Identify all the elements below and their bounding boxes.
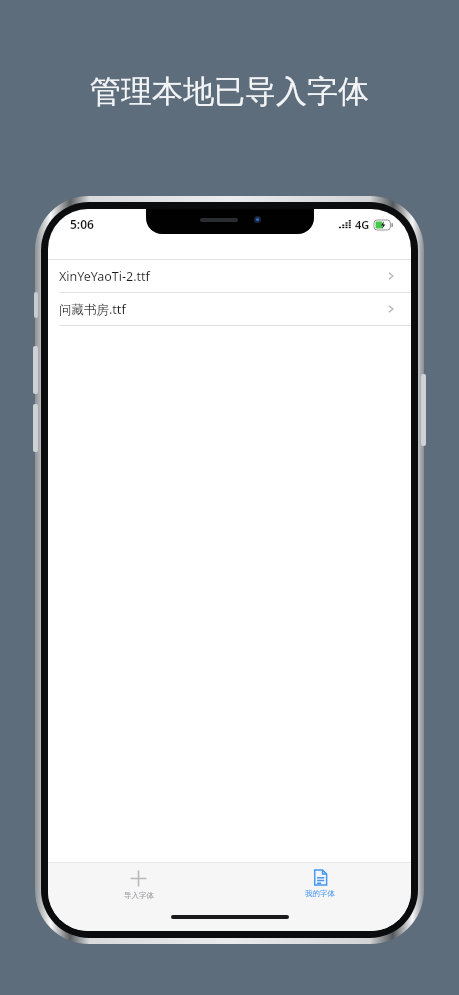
staticText: XinYeYaoTi-2.ttf: [59, 268, 385, 285]
other: My fonts: [312, 869, 329, 886]
button[interactable]: My fonts: [229, 863, 411, 909]
button[interactable]: XinYeYaoTi-2.ttf: [48, 260, 411, 292]
button[interactable]: 问藏书房.ttf: [48, 293, 411, 325]
staticText: 5:06: [70, 216, 94, 232]
button[interactable]: Import font: [48, 863, 229, 909]
staticText: 问藏书房.ttf: [59, 301, 385, 318]
other: Import font: [129, 869, 148, 888]
staticText: 4G: [355, 217, 370, 232]
staticText: 我的字体: [305, 889, 335, 898]
staticText: 管理本地已导入字体: [90, 72, 369, 111]
staticText: 导入字体: [124, 891, 154, 900]
